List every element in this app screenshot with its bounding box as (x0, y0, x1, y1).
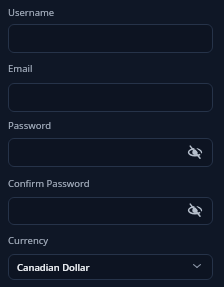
button[interactable] (8, 24, 213, 53)
button[interactable] (8, 138, 213, 167)
staticText: Canadian Dollar (17, 261, 90, 274)
button[interactable]: Canadian Dollar (8, 254, 213, 280)
button[interactable] (8, 197, 213, 225)
staticText: Confirm Password (8, 177, 90, 190)
button[interactable] (8, 83, 213, 112)
staticText: Username (8, 6, 55, 19)
staticText: Password (8, 119, 51, 132)
staticText: Currency (8, 234, 49, 247)
staticText: Email (8, 62, 33, 75)
